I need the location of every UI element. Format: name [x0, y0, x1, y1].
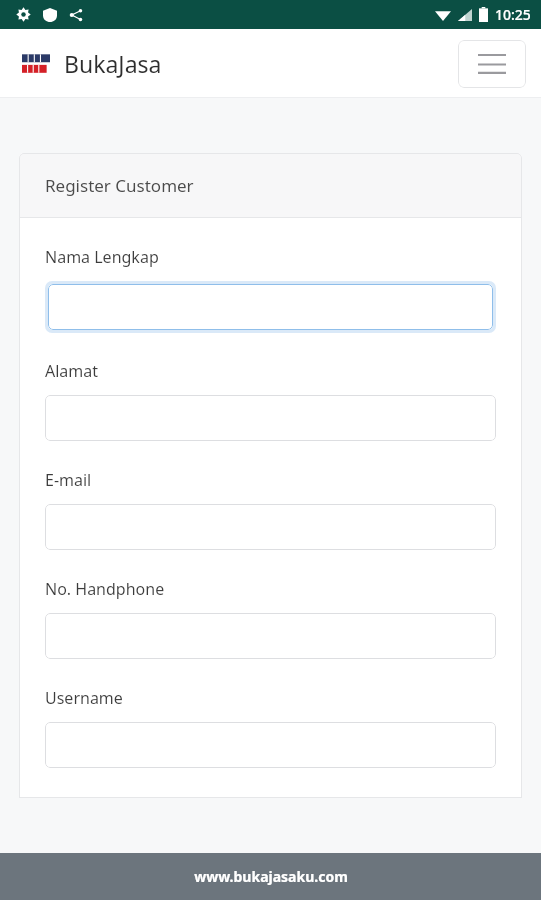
staticText: www.bukajasaku.com — [194, 867, 348, 886]
button[interactable]: Open navigation menu — [458, 40, 526, 88]
staticText: Nama Lengkap — [45, 246, 159, 268]
button[interactable]: www.bukajasaku.com — [0, 853, 541, 900]
button[interactable] — [45, 722, 496, 768]
button[interactable] — [45, 613, 496, 659]
staticText: BukaJasa — [64, 48, 162, 79]
staticText: E-mail — [45, 469, 92, 491]
staticText: No. Handphone — [45, 578, 165, 600]
staticText: Username — [45, 687, 123, 709]
staticText: Register Customer — [45, 174, 194, 197]
button[interactable] — [48, 284, 493, 330]
button[interactable] — [45, 395, 496, 441]
button[interactable] — [45, 504, 496, 550]
staticText: 10:25 — [495, 5, 531, 24]
staticText: Alamat — [45, 360, 99, 382]
